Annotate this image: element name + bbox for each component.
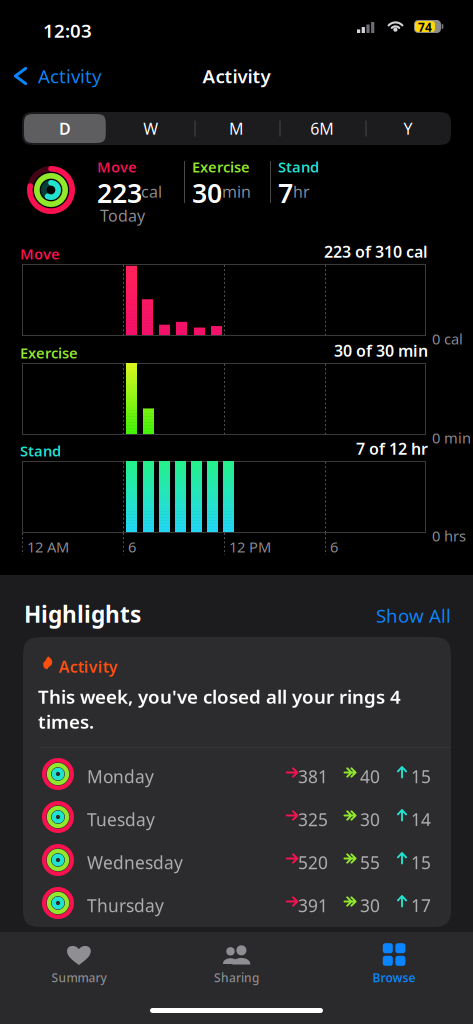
staticText: Y: [404, 118, 413, 139]
staticText: 40: [360, 765, 380, 788]
button[interactable]: Show All: [370, 598, 457, 633]
button[interactable]: Y: [365, 112, 451, 145]
staticText: 0 hrs: [432, 526, 466, 545]
button[interactable]: Browse: [315, 938, 473, 990]
staticText: 15: [411, 765, 431, 788]
staticText: M: [229, 118, 244, 139]
staticText: Friday: [87, 937, 137, 960]
staticText: 55: [360, 851, 380, 874]
staticText: Activity: [59, 656, 118, 677]
button[interactable]: Tuesday: [23, 795, 451, 838]
staticText: Today: [100, 205, 145, 226]
staticText: 325: [298, 808, 328, 831]
button[interactable]: M: [194, 112, 279, 145]
staticText: 6: [330, 537, 338, 556]
staticText: 30: [360, 808, 380, 831]
button[interactable]: Sharing: [158, 938, 315, 990]
staticText: 15: [411, 851, 431, 874]
staticText: This week, you've closed all your rings …: [38, 684, 401, 709]
staticText: 223 of 310 cal: [324, 241, 428, 262]
staticText: Stand: [278, 157, 319, 176]
staticText: 6: [128, 537, 136, 556]
staticText: 17: [411, 894, 431, 917]
staticText: 30: [360, 894, 380, 917]
button[interactable]: Wednesday: [23, 838, 451, 881]
staticText: Monday: [87, 765, 154, 788]
staticText: 381: [298, 765, 328, 788]
staticText: cal: [141, 181, 162, 202]
staticText: 0 min: [432, 428, 471, 447]
button[interactable]: 6M: [279, 112, 365, 145]
staticText: Browse: [373, 969, 416, 985]
staticText: Move: [97, 157, 137, 176]
button[interactable]: Monday: [23, 752, 451, 795]
staticText: Summary: [51, 969, 106, 985]
staticText: 14: [411, 808, 431, 831]
staticText: Sharing: [214, 969, 259, 985]
staticText: D: [59, 118, 71, 139]
staticText: Activity: [202, 64, 270, 88]
staticText: 12:03: [43, 18, 92, 43]
staticText: Activity: [38, 64, 102, 88]
staticText: 30 of 30 min: [334, 340, 428, 361]
staticText: Exercise: [192, 157, 250, 176]
staticText: min: [222, 181, 251, 202]
staticText: Thursday: [87, 894, 164, 917]
staticText: Highlights: [24, 599, 141, 629]
staticText: W: [143, 118, 158, 139]
staticText: Wednesday: [87, 851, 183, 874]
staticText: Move: [20, 244, 60, 263]
button[interactable]: Activity: [0, 54, 112, 98]
staticText: times.: [38, 709, 94, 734]
staticText: 7: [278, 175, 293, 210]
button[interactable]: Thursday: [23, 881, 451, 924]
button[interactable]: Summary: [0, 938, 158, 990]
button[interactable]: D: [22, 112, 108, 145]
staticText: 520: [298, 851, 328, 874]
staticText: 12 PM: [229, 537, 271, 556]
staticText: Stand: [20, 441, 61, 460]
staticText: 0 cal: [432, 329, 463, 348]
button[interactable]: Friday: [23, 924, 451, 967]
staticText: 12 AM: [27, 537, 69, 556]
staticText: 7 of 12 hr: [356, 438, 428, 459]
staticText: hr: [293, 181, 310, 202]
staticText: Show All: [376, 603, 451, 628]
staticText: 391: [298, 894, 328, 917]
staticText: 30: [192, 175, 222, 210]
staticText: Tuesday: [87, 808, 155, 831]
staticText: 223: [97, 175, 142, 210]
staticText: Exercise: [20, 343, 78, 362]
staticText: 74: [418, 19, 432, 35]
staticText: 6M: [310, 118, 334, 139]
button[interactable]: W: [108, 112, 194, 145]
